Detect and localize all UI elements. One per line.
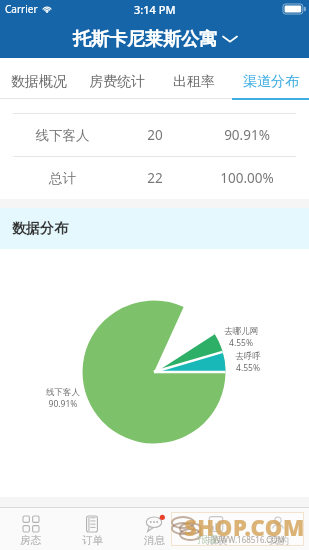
staticText: 线下客人 90.91% — [46, 387, 80, 409]
button[interactable]: 房费统计 — [78, 58, 155, 100]
staticText: 数据概况 — [11, 73, 67, 91]
button[interactable]: 房态 — [0, 508, 61, 550]
button[interactable]: 总计 — [0, 157, 309, 199]
button[interactable]: 渠道分布 — [232, 58, 309, 100]
staticText: 消息 — [144, 534, 165, 547]
staticText: 100.00% — [201, 169, 293, 187]
button[interactable]: 线下客人 — [0, 114, 309, 156]
staticText: 出租率 — [173, 73, 215, 91]
staticText: WWW.168516.COM — [213, 534, 285, 545]
button[interactable]: 托斯卡尼莱斯公寓 — [0, 20, 309, 58]
staticText: 线下客人 — [16, 127, 109, 144]
staticText: 20 — [109, 126, 201, 144]
button[interactable]: 消息 — [123, 508, 185, 550]
button[interactable]: 我的 — [247, 508, 309, 550]
staticText: 数据分布 — [12, 220, 68, 238]
staticText: Carrier — [5, 2, 38, 16]
staticText: 22 — [109, 169, 201, 187]
staticText: 房费统计 — [89, 73, 145, 91]
staticText: 报表 — [206, 534, 227, 547]
staticText: 去呼呼 4.55% — [235, 351, 261, 373]
staticText: 订单 — [82, 534, 103, 547]
staticText: 总计 — [16, 170, 109, 187]
button[interactable]: 订单 — [61, 508, 123, 550]
staticText: 渠道分布 — [243, 73, 299, 91]
staticText: SHOP.COM — [184, 512, 305, 542]
button[interactable]: 数据分布 — [0, 208, 309, 249]
staticText: 3:14 PM — [134, 2, 176, 17]
button[interactable]: 出租率 — [155, 58, 232, 100]
staticText: 房态 — [20, 534, 41, 547]
staticText: 我的 — [268, 534, 289, 547]
staticText: 90.91% — [201, 126, 293, 144]
staticText: 托斯卡尼莱斯公寓 — [73, 28, 217, 51]
button[interactable]: 数据概况 — [0, 58, 78, 100]
staticText: 去哪儿网 4.55% — [224, 326, 258, 348]
staticText: 报表 — [197, 533, 218, 546]
button[interactable]: 报表 — [185, 508, 247, 550]
